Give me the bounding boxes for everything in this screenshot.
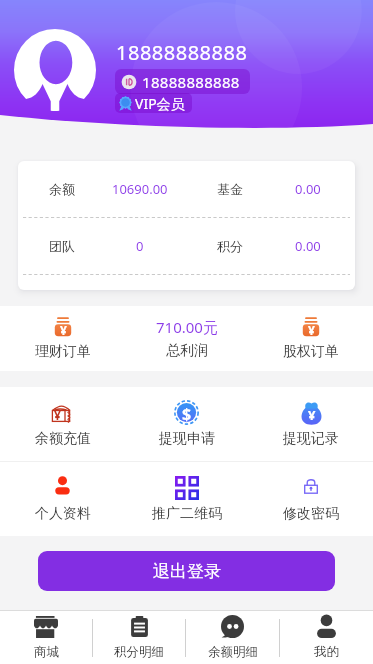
staticText: 0.00 [295, 237, 321, 255]
button[interactable]: ¥ [249, 306, 373, 371]
button[interactable]: 积分明细 [93, 611, 185, 664]
button[interactable]: 基金 [186, 161, 355, 217]
button[interactable]: 团队 [18, 218, 186, 274]
staticText: 团队 [49, 238, 75, 254]
staticText: 提现记录 [283, 430, 339, 448]
staticText: VIP会员 [135, 94, 185, 113]
button[interactable]: VIP会员 [117, 93, 185, 113]
staticText: 修改密码 [283, 505, 339, 523]
staticText: $ [182, 403, 192, 425]
staticText: 总利润 [166, 342, 208, 360]
staticText: 余额充值 [35, 430, 91, 448]
staticText: ¥ [54, 407, 61, 423]
button[interactable]: 退出登录 [38, 551, 335, 591]
staticText: 积分 [217, 238, 243, 254]
staticText: 710.00元 [156, 317, 218, 337]
staticText: 余额 [49, 181, 75, 197]
staticText: 我的 [314, 644, 339, 660]
button[interactable]: 商城 [0, 611, 92, 664]
staticText: 积分明细 [114, 644, 164, 660]
staticText: 基金 [217, 181, 243, 197]
staticText: 股权订单 [283, 343, 339, 361]
button[interactable]: 余额 [18, 161, 186, 217]
button[interactable]: $ [125, 387, 249, 461]
staticText: 理财订单 [35, 343, 91, 361]
button[interactable]: ¥ [0, 306, 125, 371]
staticText: 推广二维码 [152, 505, 222, 523]
staticText: 个人资料 [35, 505, 91, 523]
button[interactable]: 710.00元 [125, 306, 249, 371]
button[interactable]: 我的 [280, 611, 373, 664]
staticText: 0 [136, 237, 144, 255]
button[interactable]: 余额明细 [186, 611, 279, 664]
button[interactable]: ¥ [0, 387, 125, 461]
button[interactable]: 推广二维码 [125, 462, 249, 536]
button[interactable]: 个人资料 [0, 462, 125, 536]
staticText: 18888888888 [116, 39, 248, 66]
button[interactable]: 18888888888 [121, 69, 240, 94]
staticText: ¥ [308, 406, 316, 424]
staticText: ¥ [60, 322, 67, 338]
button[interactable]: 修改密码 [249, 462, 373, 536]
staticText: 18888888888 [142, 72, 240, 92]
button[interactable]: 积分 [186, 218, 355, 274]
staticText: 商城 [34, 644, 59, 660]
staticText: ¥ [308, 322, 315, 338]
staticText: 退出登录 [153, 561, 221, 582]
staticText: 提现申请 [159, 430, 215, 448]
button[interactable]: ¥ [249, 387, 373, 461]
staticText: 0.00 [295, 180, 321, 198]
staticText: 10690.00 [112, 180, 168, 198]
staticText: 余额明细 [208, 644, 258, 660]
